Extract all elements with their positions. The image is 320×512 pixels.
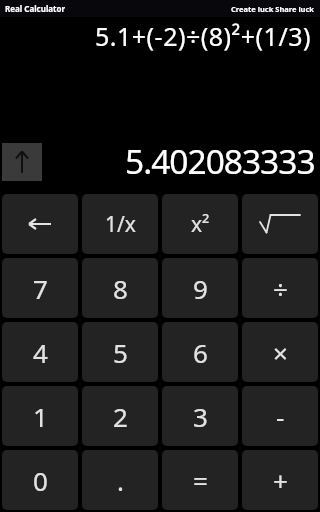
staticText: - (276, 399, 285, 434)
button[interactable]: 3 (162, 386, 238, 446)
staticText: ÷ (273, 271, 288, 306)
staticText: 5 (113, 335, 128, 370)
staticText: = (193, 463, 208, 498)
staticText: 1/x (105, 210, 136, 239)
button[interactable]: 7 (2, 258, 78, 318)
staticText: 7 (33, 271, 48, 306)
staticText: 3 (193, 399, 208, 434)
staticText: 2 (113, 399, 128, 434)
button[interactable]: x² (162, 194, 238, 254)
button[interactable]: × (242, 322, 318, 382)
button[interactable]: 2 (82, 386, 158, 446)
staticText: 1 (33, 399, 48, 434)
staticText: 5.402083333 (125, 138, 315, 184)
staticText: 9 (193, 271, 208, 306)
staticText: x² (191, 210, 210, 239)
staticText: Real Calculator (5, 3, 66, 14)
staticText: 4 (33, 335, 48, 370)
button[interactable] (242, 194, 318, 254)
staticText: . (117, 463, 124, 498)
button[interactable]: = (162, 450, 238, 510)
button[interactable]: 1 (2, 386, 78, 446)
button[interactable]: 4 (2, 322, 78, 382)
button[interactable]: 1/x (82, 194, 158, 254)
staticText: × (273, 335, 288, 370)
button[interactable]: ÷ (242, 258, 318, 318)
button[interactable]: Create luck Share luck (231, 4, 315, 14)
button[interactable]: 0 (2, 450, 78, 510)
button[interactable] (2, 194, 78, 254)
button[interactable]: . (82, 450, 158, 510)
staticText: 0 (33, 463, 48, 498)
button[interactable] (2, 143, 42, 181)
button[interactable]: 6 (162, 322, 238, 382)
staticText: 8 (113, 271, 128, 306)
button[interactable]: 9 (162, 258, 238, 318)
staticText: 6 (193, 335, 208, 370)
staticText: 5.1+(-2)÷(8)²+(1/3) (95, 19, 312, 53)
button[interactable]: + (242, 450, 318, 510)
button[interactable]: 5 (82, 322, 158, 382)
button[interactable]: 8 (82, 258, 158, 318)
button[interactable]: - (242, 386, 318, 446)
staticText: + (273, 463, 288, 498)
